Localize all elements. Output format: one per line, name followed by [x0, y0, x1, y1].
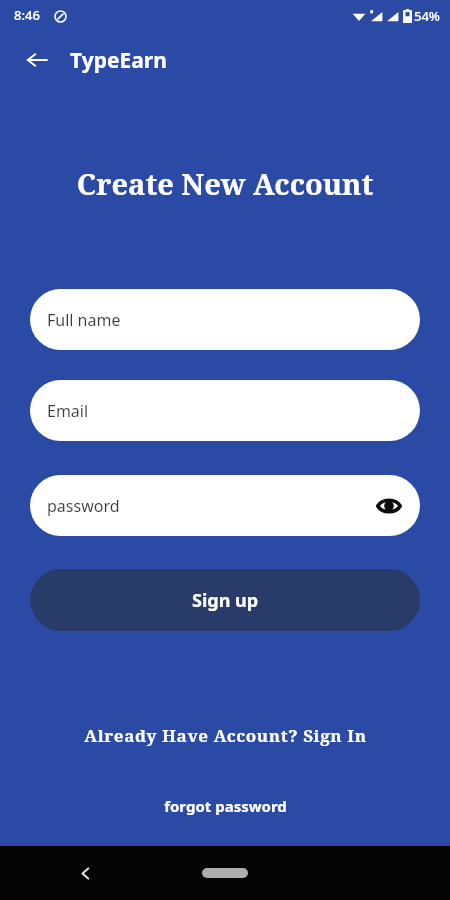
button[interactable]: Back	[65, 853, 105, 893]
button[interactable]: password	[30, 475, 420, 536]
button[interactable]: Show password	[372, 489, 406, 523]
button[interactable]: Already Have Account? Sign In	[40, 721, 410, 749]
button[interactable]: Full name	[30, 289, 420, 350]
button[interactable]: Back	[16, 39, 58, 81]
staticText: TypeEarn	[70, 46, 167, 75]
button[interactable]: Home	[196, 858, 254, 888]
staticText: password	[47, 495, 120, 517]
button[interactable]: forgot password	[110, 793, 340, 819]
staticText: Already Have Account? Sign In	[84, 724, 367, 747]
staticText: Email	[47, 400, 89, 422]
button[interactable]: Sign up	[30, 569, 420, 631]
staticText: 54%	[414, 7, 440, 25]
staticText: 8:46	[14, 6, 40, 24]
staticText: Full name	[47, 309, 121, 331]
button[interactable]: Email	[30, 380, 420, 441]
staticText: Create New Account	[0, 164, 450, 203]
staticText: forgot password	[164, 796, 287, 816]
staticText: Sign up	[192, 588, 259, 613]
